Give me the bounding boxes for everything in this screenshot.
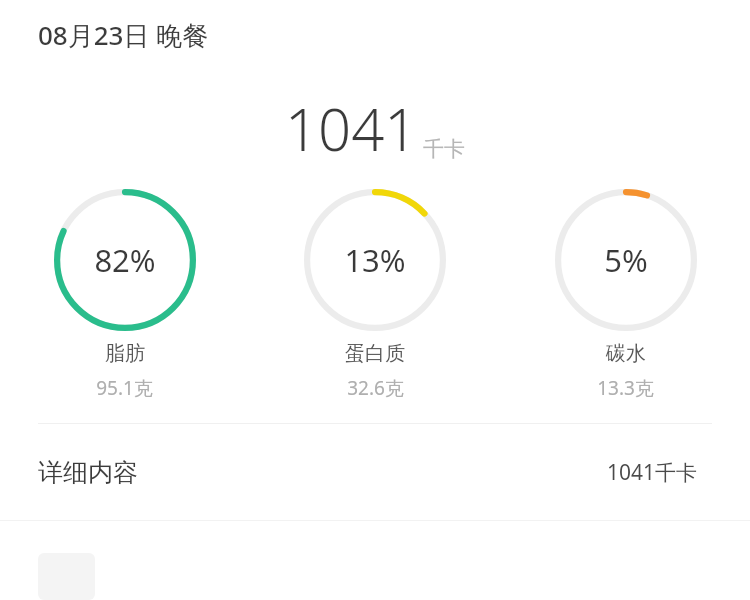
staticText: 13%	[344, 239, 406, 281]
button[interactable]: 82%	[18, 189, 231, 401]
button[interactable]: 详细内容	[0, 424, 750, 520]
staticText: 5%	[604, 239, 648, 281]
staticText: 蛋白质	[345, 341, 405, 366]
staticText: 千卡	[423, 136, 465, 162]
staticText: 13.3克	[597, 375, 654, 401]
staticText: 08月23日 晚餐	[38, 17, 209, 53]
staticText: 碳水	[606, 341, 646, 366]
staticText: 1041	[285, 89, 418, 168]
staticText: 脂肪	[105, 341, 145, 366]
staticText: 82%	[94, 239, 156, 281]
button[interactable]: 13%	[268, 189, 482, 401]
staticText: 详细内容	[38, 457, 138, 488]
staticText: 1041千卡	[607, 458, 698, 487]
staticText: 32.6克	[347, 375, 404, 401]
button[interactable]: 5%	[519, 189, 732, 401]
staticText: 95.1克	[96, 375, 153, 401]
